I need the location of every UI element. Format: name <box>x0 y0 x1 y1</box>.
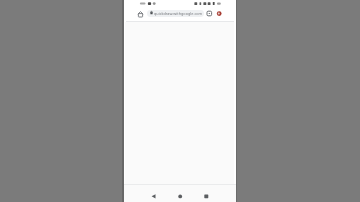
button[interactable] <box>147 10 204 17</box>
staticText: quickdraw.withgoogle.com <box>154 11 203 16</box>
button[interactable] <box>216 10 223 17</box>
button[interactable] <box>146 189 161 202</box>
button[interactable] <box>173 189 188 202</box>
button[interactable] <box>206 10 214 18</box>
button[interactable] <box>137 11 145 19</box>
button[interactable] <box>199 189 214 202</box>
